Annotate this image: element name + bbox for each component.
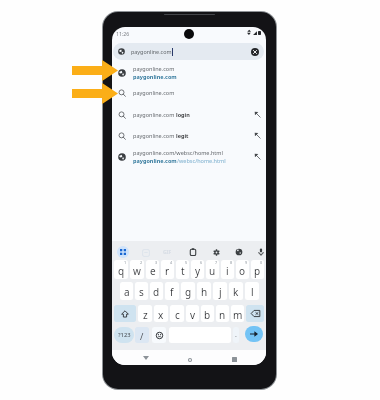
staticText: r <box>165 264 170 278</box>
staticText: e <box>150 264 156 278</box>
button[interactable]: y <box>191 260 204 279</box>
staticText: g <box>185 285 192 299</box>
button[interactable]: i <box>221 260 234 279</box>
staticText: f <box>170 285 174 299</box>
button[interactable]: Gboard <box>117 246 129 258</box>
button[interactable]: t <box>176 260 189 279</box>
button[interactable]: Emoji <box>152 327 166 343</box>
button[interactable]: Backspace <box>246 305 264 322</box>
button[interactable]: v <box>186 305 199 322</box>
staticText: y <box>195 264 201 278</box>
button[interactable]: Home <box>182 352 198 365</box>
staticText: 2 <box>140 260 143 265</box>
staticText: 11:26 <box>116 30 130 37</box>
button[interactable]: z <box>138 305 152 322</box>
staticText: l <box>251 285 254 299</box>
staticText: paygonline.com <box>131 48 172 55</box>
button[interactable]: Clipboard <box>188 247 198 257</box>
button[interactable]: k <box>229 282 243 300</box>
button[interactable]: Back <box>138 350 154 365</box>
staticText: 8 <box>230 260 233 265</box>
staticText: d <box>153 285 160 299</box>
other: Pointer arrow <box>72 83 118 104</box>
button[interactable]: h <box>197 282 211 300</box>
staticText: legit <box>176 132 189 139</box>
staticText: 3 <box>155 260 158 265</box>
button[interactable]: u <box>206 260 219 279</box>
button[interactable]: n <box>216 305 229 322</box>
button[interactable]: p <box>251 260 264 279</box>
staticText: a <box>124 285 130 299</box>
button[interactable]: r <box>161 260 174 279</box>
staticText: paygonline.com <box>133 65 175 72</box>
staticText: paygonline.com <box>133 89 175 96</box>
button[interactable]: Themes <box>234 247 244 257</box>
button[interactable]: Go <box>245 326 263 342</box>
button[interactable]: paygonline.com/websc/home.html <box>112 146 266 167</box>
staticText: k <box>233 285 239 299</box>
staticText: c <box>175 308 180 322</box>
button[interactable]: f <box>165 282 179 300</box>
button[interactable]: Voice input <box>256 247 266 257</box>
button[interactable]: paygonline.com <box>112 105 266 124</box>
staticText: paygonline.com <box>133 132 176 139</box>
button[interactable]: paygonline.com <box>112 126 266 145</box>
other: Insert suggestion <box>254 111 261 118</box>
button[interactable]: s <box>135 282 148 300</box>
other: Insert suggestion <box>254 132 261 139</box>
staticText: paygonline.com <box>133 73 177 80</box>
staticText: 0 <box>260 260 263 265</box>
button[interactable]: b <box>201 305 214 322</box>
staticText: / <box>140 330 144 342</box>
staticText: . <box>235 330 237 340</box>
button[interactable]: q <box>114 260 128 279</box>
button[interactable]: x <box>154 305 168 322</box>
staticText: m <box>233 308 243 322</box>
staticText: j <box>219 285 222 299</box>
button[interactable]: l <box>245 282 259 300</box>
staticText: 5 <box>185 260 188 265</box>
staticText: h <box>201 285 208 299</box>
staticText: 1 <box>124 260 127 265</box>
button[interactable]: . <box>233 327 239 343</box>
button[interactable]: / <box>135 327 149 343</box>
staticText: 6 <box>200 260 203 265</box>
button[interactable]: paygonline.com <box>112 62 266 83</box>
staticText: w <box>133 264 141 278</box>
staticText: paygonline.com <box>133 111 176 118</box>
staticText: v <box>190 308 196 322</box>
button[interactable]: Recent apps <box>226 351 242 365</box>
staticText: u <box>209 264 216 278</box>
button[interactable]: g <box>181 282 195 300</box>
staticText: 7 <box>215 260 218 265</box>
staticText: paygonline.com/websc/home.html <box>133 149 223 156</box>
staticText: q <box>118 264 125 278</box>
staticText: paygonline.com <box>133 157 177 164</box>
button[interactable]: a <box>120 282 133 300</box>
staticText: z <box>143 308 148 322</box>
button[interactable]: m <box>231 305 244 322</box>
button[interactable]: paygonline.com <box>113 43 264 60</box>
button[interactable]: o <box>236 260 249 279</box>
button[interactable]: d <box>150 282 163 300</box>
button[interactable]: ?123 <box>114 327 134 343</box>
staticText: n <box>219 308 226 322</box>
button[interactable]: Settings <box>211 247 221 257</box>
staticText: i <box>226 264 229 278</box>
button[interactable]: GIF <box>163 249 172 256</box>
button[interactable]: j <box>213 282 227 300</box>
staticText: o <box>239 264 246 278</box>
button[interactable]: w <box>130 260 144 279</box>
other: Insert suggestion <box>254 153 261 160</box>
button[interactable]: Stickers <box>141 248 150 257</box>
button[interactable]: c <box>170 305 184 322</box>
staticText: login <box>176 111 190 118</box>
button[interactable]: paygonline.com <box>112 83 266 102</box>
staticText: t <box>181 264 185 278</box>
button[interactable]: e <box>146 260 159 279</box>
button[interactable]: Shift <box>114 305 136 322</box>
staticText: ?123 <box>118 331 131 339</box>
staticText: /websc/home.html <box>177 157 226 164</box>
staticText: 4 <box>170 260 173 265</box>
